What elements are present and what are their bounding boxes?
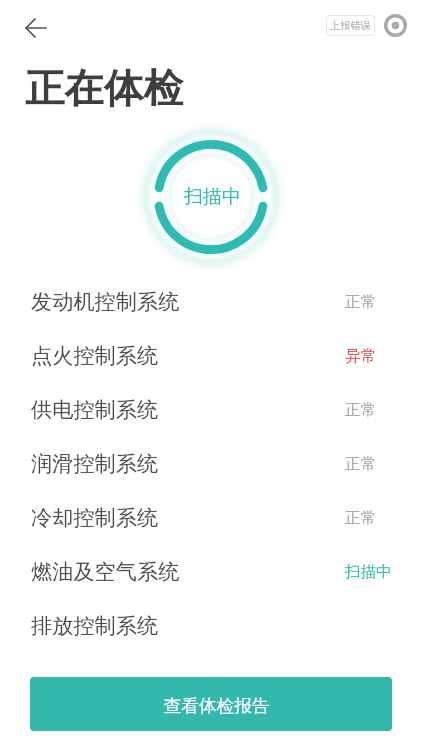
- staticText: 扫描中: [184, 185, 241, 209]
- button[interactable]: 供电控制系统: [0, 383, 422, 437]
- button[interactable]: 排放控制系统: [0, 599, 422, 653]
- staticText: 冷却控制系统: [31, 505, 159, 532]
- staticText: 燃油及空气系统: [31, 559, 180, 586]
- staticText: 查看体检报告: [163, 695, 270, 717]
- staticText: 发动机控制系统: [31, 289, 180, 316]
- staticText: 润滑控制系统: [31, 451, 159, 478]
- staticText: 正在体检: [25, 64, 183, 114]
- button[interactable]: Back: [16, 8, 56, 48]
- button[interactable]: 发动机控制系统: [0, 275, 422, 329]
- staticText: 正常: [345, 292, 376, 312]
- staticText: 正常: [345, 454, 376, 474]
- button[interactable]: 燃油及空气系统: [0, 545, 422, 599]
- button[interactable]: 点火控制系统: [0, 329, 422, 383]
- staticText: 供电控制系统: [31, 397, 159, 424]
- button[interactable]: 查看体检报告: [30, 677, 392, 731]
- staticText: 异常: [345, 346, 376, 366]
- staticText: 正常: [345, 508, 376, 528]
- staticText: 上报错误: [330, 19, 371, 32]
- button[interactable]: 上报错误: [326, 15, 375, 36]
- staticText: 排放控制系统: [31, 613, 159, 640]
- button[interactable]: 冷却控制系统: [0, 491, 422, 545]
- staticText: 扫描中: [345, 562, 392, 582]
- staticText: 正常: [345, 400, 376, 420]
- staticText: 点火控制系统: [31, 343, 159, 370]
- button[interactable]: Record: [380, 10, 411, 41]
- button[interactable]: 润滑控制系统: [0, 437, 422, 491]
